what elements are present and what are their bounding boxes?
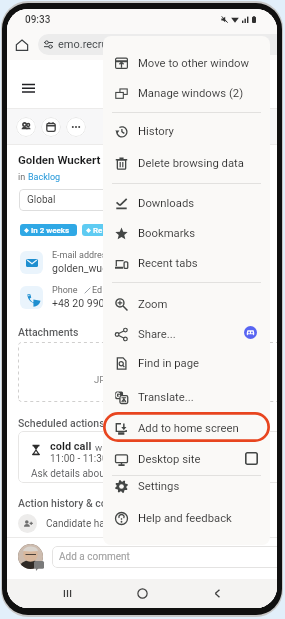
button[interactable]: Calendar — [41, 117, 61, 137]
button[interactable]: Re — [82, 224, 122, 236]
staticText: Ed — [92, 285, 103, 296]
staticText: 09:33 — [25, 14, 51, 26]
button[interactable]: Share... — [103, 319, 270, 349]
staticText: +48 20 990 5 — [52, 297, 113, 309]
staticText: E-mail address — [52, 250, 112, 261]
button[interactable]: Menu — [17, 77, 39, 99]
staticText: Settings — [138, 480, 180, 493]
button[interactable]: Your avatar — [18, 544, 43, 569]
button[interactable]: Phone — [20, 285, 113, 309]
staticText: Translate... — [138, 391, 194, 404]
staticText: Candidate has — [46, 518, 110, 530]
staticText: Move to other window — [138, 57, 250, 70]
button[interactable]: JPG, PNG — [18, 342, 277, 402]
button[interactable]: Downloads — [103, 188, 270, 218]
staticText: Desktop site — [138, 453, 201, 466]
button[interactable]: People — [16, 117, 36, 137]
staticText: Scheduled actions — [18, 417, 105, 429]
staticText: Phone — [52, 285, 78, 296]
staticText: with To — [95, 442, 126, 453]
staticText: in — [18, 172, 28, 183]
staticText: golden_wuck — [52, 262, 113, 274]
button[interactable]: cold call — [18, 431, 277, 483]
staticText: Add to home screen — [138, 422, 239, 435]
button[interactable]: Home — [127, 579, 157, 607]
staticText: Bookmarks — [138, 227, 196, 240]
button[interactable]: Manage windows (2) — [103, 78, 270, 108]
staticText: Backlog — [28, 172, 61, 183]
staticText: JPG, PNG — [94, 374, 136, 385]
staticText: Golden Wuckert — [18, 153, 101, 166]
staticText: Share... — [138, 328, 176, 341]
button[interactable]: Settings — [103, 471, 270, 501]
button[interactable]: Desktop site — [103, 444, 270, 474]
button[interactable]: emo.recruitee.com — [38, 34, 277, 55]
button[interactable]: Translate... — [103, 382, 270, 412]
button[interactable]: History — [103, 116, 270, 146]
staticText: Recent tabs — [138, 257, 198, 270]
staticText: History — [138, 125, 174, 138]
button[interactable]: Add a comment — [52, 546, 277, 568]
staticText: Find in page — [138, 357, 200, 370]
staticText: In 2 weeks — [31, 226, 70, 235]
staticText: Downloads — [138, 197, 195, 210]
staticText: Delete browsing data — [138, 157, 244, 170]
button[interactable]: Bookmarks — [103, 218, 270, 248]
staticText: Attachments — [18, 326, 79, 338]
button[interactable]: Back — [202, 579, 232, 607]
button[interactable]: More options — [66, 117, 86, 137]
staticText: 11:00 - 11:30 — [50, 453, 108, 465]
button[interactable]: In 2 weeks — [20, 224, 77, 236]
staticText: Ask details about prev — [31, 468, 130, 480]
button[interactable]: Add to home screen — [103, 413, 270, 443]
staticText: Manage windows (2) — [138, 87, 244, 100]
staticText: Re — [93, 226, 103, 235]
button[interactable]: Zoom — [103, 289, 270, 319]
button[interactable]: Global — [19, 189, 151, 211]
button[interactable]: Find in page — [103, 348, 270, 378]
staticText: Zoom — [138, 298, 168, 311]
button[interactable]: Home — [11, 34, 32, 55]
button[interactable]: E-mail address — [20, 250, 113, 274]
staticText: emo.recruitee.com — [58, 38, 151, 51]
staticText: Help and feedback — [138, 512, 232, 525]
button[interactable]: Recent tabs — [103, 248, 270, 278]
staticText: cold call — [50, 440, 92, 453]
staticText: Add a comment — [59, 551, 130, 563]
button[interactable]: Help and feedback — [103, 503, 270, 533]
staticText: Global — [27, 194, 56, 206]
staticText: Action history & com — [18, 497, 116, 509]
button[interactable]: Delete browsing data — [103, 148, 270, 178]
button[interactable]: Recent apps — [52, 579, 82, 607]
button[interactable]: Move to other window — [103, 48, 270, 78]
